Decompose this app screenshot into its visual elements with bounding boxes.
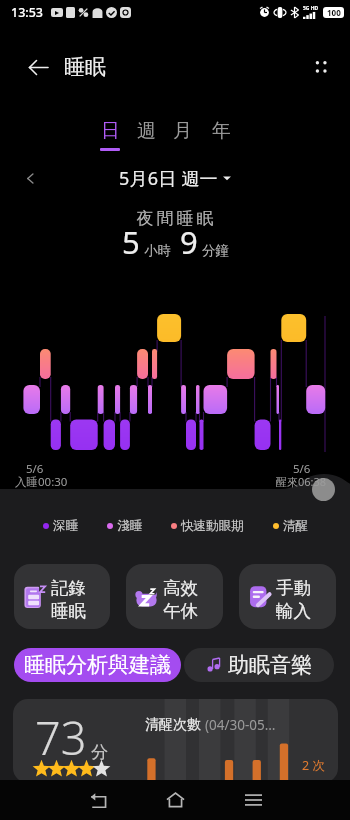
staticText: 醒來06:38 — [276, 474, 327, 488]
button[interactable]: Menu — [230, 780, 276, 820]
staticText: 快速動眼期 — [181, 518, 244, 534]
staticText: 午休 — [163, 600, 198, 622]
button[interactable]: 手動 — [239, 564, 336, 629]
staticText: 淺睡 — [117, 518, 142, 534]
staticText: 73 — [35, 707, 87, 768]
staticText: 手動 — [276, 577, 311, 599]
staticText: 13:53 — [11, 4, 44, 21]
staticText: 100 — [327, 7, 341, 18]
staticText: 深睡 — [53, 518, 78, 534]
button[interactable]: 助眠音樂 — [184, 648, 334, 682]
staticText: 日 — [101, 119, 120, 143]
staticText: 夜間睡眠 — [135, 208, 215, 229]
button[interactable]: 睡眠分析與建議 — [14, 648, 181, 682]
button[interactable]: 記錄 — [14, 564, 110, 629]
button[interactable]: 週 — [128, 119, 164, 155]
staticText: 高效 — [163, 577, 198, 599]
button[interactable]: Back — [75, 780, 121, 820]
staticText: 週 — [137, 119, 156, 143]
button[interactable]: 5月6日 週一 — [115, 164, 235, 192]
staticText: 清醒次數 — [145, 716, 201, 734]
button[interactable]: 年 — [203, 119, 239, 155]
button[interactable]: Expand chart — [312, 478, 335, 501]
staticText: 5G HD — [303, 5, 319, 12]
button[interactable]: Home — [152, 780, 198, 820]
staticText: 月 — [173, 119, 192, 143]
staticText: 年 — [212, 119, 231, 143]
staticText: 入睡00:30 — [15, 474, 68, 488]
staticText: 清醒 — [283, 518, 308, 534]
staticText: 助眠音樂 — [228, 652, 312, 678]
button[interactable]: Previous day — [17, 165, 43, 191]
staticText: 9 — [180, 221, 198, 263]
button[interactable]: 高效 — [126, 564, 223, 629]
staticText: 2 次 — [302, 757, 325, 774]
staticText: 記錄 — [51, 577, 86, 599]
staticText: 5/6 — [293, 461, 311, 477]
staticText: (04/30-05… — [205, 716, 276, 734]
staticText: 分鐘 — [202, 242, 229, 259]
staticText: 睡眠 — [64, 54, 106, 80]
staticText: 輸入 — [276, 600, 311, 622]
staticText: 睡眠分析與建議 — [24, 652, 171, 678]
staticText: 小時 — [144, 242, 171, 259]
staticText: 5/6 — [26, 461, 44, 477]
button[interactable]: 月 — [164, 119, 200, 155]
staticText: 睡眠 — [51, 600, 86, 622]
staticText: 5月6日 週一 — [119, 166, 218, 190]
staticText: 分 — [91, 742, 108, 763]
button[interactable]: More options — [306, 52, 336, 82]
button[interactable]: 73 — [13, 699, 338, 783]
staticText: 5 — [122, 221, 140, 263]
button[interactable]: 日 — [92, 119, 128, 155]
button[interactable]: Back — [21, 50, 55, 84]
